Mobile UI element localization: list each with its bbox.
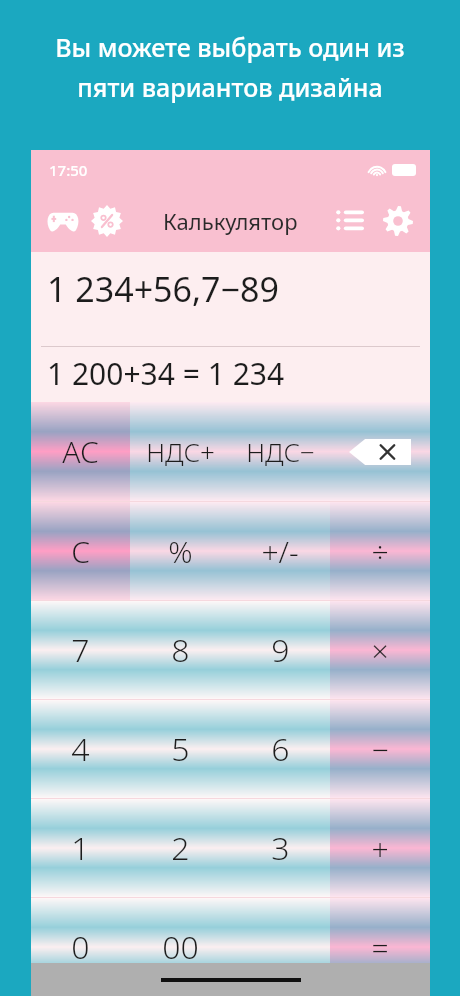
staticText: −: [371, 729, 389, 770]
staticText: 17:50: [49, 160, 88, 180]
staticText: Калькулятор: [163, 206, 298, 236]
button[interactable]: =: [330, 898, 430, 996]
staticText: 5: [171, 727, 190, 771]
staticText: 7: [71, 628, 90, 672]
staticText: 0: [71, 925, 90, 969]
staticText: 1 234+56,7−89: [47, 266, 279, 312]
staticText: +/-: [261, 531, 299, 572]
staticText: 00: [162, 925, 199, 969]
staticText: Вы можете выбрать один из: [55, 30, 405, 64]
other: Backspace: [330, 402, 430, 501]
button[interactable]: +/-: [230, 502, 330, 600]
staticText: 9: [271, 628, 290, 672]
staticText: ÷: [371, 531, 389, 572]
staticText: 3: [271, 826, 290, 870]
button[interactable]: Games: [41, 199, 85, 243]
button[interactable]: +: [330, 799, 430, 897]
button[interactable]: 2: [130, 799, 230, 897]
staticText: 4: [71, 727, 90, 771]
button[interactable]: 00: [130, 898, 230, 996]
staticText: %: [168, 531, 193, 572]
button[interactable]: 3: [230, 799, 330, 897]
button[interactable]: AC: [31, 402, 130, 501]
button[interactable]: ÷: [330, 502, 430, 600]
staticText: 8: [171, 628, 190, 672]
staticText: 6: [271, 727, 290, 771]
staticText: пяти вариантов дизайна: [77, 70, 383, 104]
staticText: 1: [71, 826, 90, 870]
button[interactable]: 7: [31, 601, 130, 699]
button[interactable]: 5: [130, 700, 230, 798]
button[interactable]: 1: [31, 799, 130, 897]
button[interactable]: 0: [31, 898, 130, 996]
button[interactable]: НДС+: [130, 402, 230, 501]
staticText: 1 200+34 = 1 234: [47, 353, 285, 394]
button[interactable]: History: [326, 197, 374, 245]
staticText: 2: [171, 826, 190, 870]
button[interactable]: 6: [230, 700, 330, 798]
button[interactable]: Discount: [85, 199, 129, 243]
button[interactable]: Backspace: [330, 402, 430, 501]
staticText: ×: [371, 630, 389, 671]
button[interactable]: ×: [330, 601, 430, 699]
button[interactable]: Settings: [374, 197, 422, 245]
staticText: =: [371, 927, 389, 968]
button[interactable]: −: [330, 700, 430, 798]
button[interactable]: ,: [230, 898, 330, 996]
button[interactable]: 4: [31, 700, 130, 798]
staticText: AC: [62, 431, 99, 472]
staticText: +: [371, 828, 389, 869]
staticText: ,: [276, 934, 285, 978]
button[interactable]: C: [31, 502, 130, 600]
button[interactable]: 9: [230, 601, 330, 699]
button[interactable]: НДС−: [230, 402, 330, 501]
staticText: НДС−: [246, 434, 315, 469]
button[interactable]: 8: [130, 601, 230, 699]
staticText: НДС+: [146, 434, 215, 469]
staticText: C: [71, 531, 90, 572]
button[interactable]: %: [130, 502, 230, 600]
